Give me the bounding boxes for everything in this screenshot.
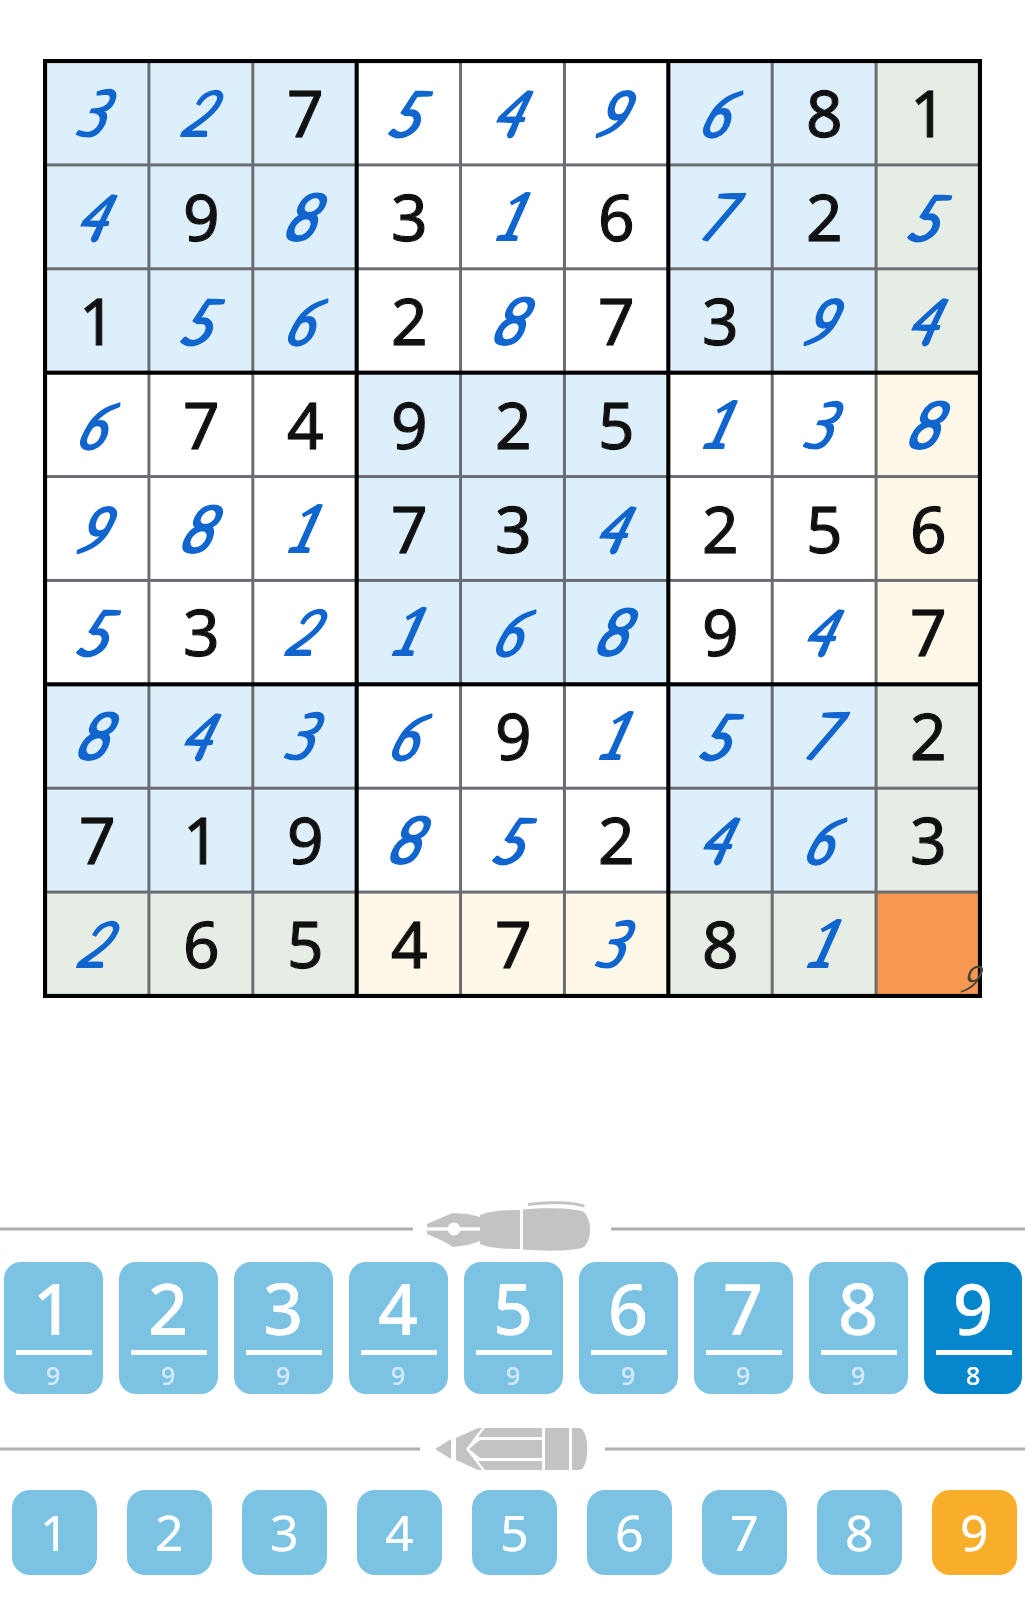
button[interactable]: 5 (149, 269, 253, 373)
button[interactable]: 2 (564, 788, 668, 892)
button[interactable]: 6 (587, 1490, 672, 1575)
button[interactable]: 1 (4, 1262, 103, 1394)
button[interactable]: 8 (253, 165, 357, 269)
button[interactable]: 4 (349, 1262, 448, 1394)
button[interactable]: 3 (149, 580, 253, 684)
button[interactable]: 7 (253, 61, 357, 165)
button[interactable]: 3 (772, 373, 876, 477)
button[interactable]: 8 (149, 477, 253, 581)
button[interactable]: 7 (45, 788, 149, 892)
button[interactable]: 1 (149, 788, 253, 892)
button[interactable]: Pencil notes mode (430, 1417, 600, 1467)
button[interactable]: 4 (149, 684, 253, 788)
button[interactable]: 8 (809, 1262, 908, 1394)
button[interactable]: 3 (242, 1490, 327, 1575)
button[interactable]: 3 (668, 269, 772, 373)
button[interactable]: 5 (876, 165, 980, 269)
button[interactable]: 3 (564, 892, 668, 996)
button[interactable]: 2 (668, 477, 772, 581)
button[interactable]: 1 (253, 477, 357, 581)
button[interactable]: 1 (876, 61, 980, 165)
button[interactable]: 5 (772, 477, 876, 581)
button[interactable]: 9 (149, 165, 253, 269)
button[interactable]: 8 (772, 61, 876, 165)
button[interactable]: 5 (45, 580, 149, 684)
button[interactable]: 5 (253, 892, 357, 996)
button[interactable]: 9 (357, 373, 461, 477)
button[interactable]: 7 (772, 684, 876, 788)
button[interactable]: 8 (357, 788, 461, 892)
button[interactable]: 5 (461, 788, 565, 892)
button[interactable]: 1 (12, 1490, 97, 1575)
button[interactable]: 3 (234, 1262, 333, 1394)
button[interactable]: 3 (461, 477, 565, 581)
button[interactable]: 4 (461, 61, 565, 165)
button[interactable]: 7 (357, 477, 461, 581)
button[interactable]: 4 (876, 269, 980, 373)
button[interactable]: 5 (472, 1490, 557, 1575)
button[interactable]: 4 (564, 477, 668, 581)
button[interactable]: 2 (127, 1490, 212, 1575)
button[interactable]: 2 (253, 580, 357, 684)
button[interactable]: 4 (253, 373, 357, 477)
button[interactable]: 8 (876, 373, 980, 477)
button[interactable]: 3 (45, 61, 149, 165)
button[interactable]: 8 (461, 269, 565, 373)
button[interactable]: 6 (461, 580, 565, 684)
button[interactable]: 5 (357, 61, 461, 165)
button[interactable]: 6 (564, 165, 668, 269)
button[interactable]: 6 (772, 788, 876, 892)
button[interactable]: 3 (876, 788, 980, 892)
button[interactable]: 5 (668, 684, 772, 788)
button[interactable]: 9 (932, 1490, 1017, 1575)
button[interactable]: 6 (579, 1262, 678, 1394)
button[interactable]: 8 (45, 684, 149, 788)
button[interactable]: 7 (149, 373, 253, 477)
button[interactable]: 7 (564, 269, 668, 373)
button[interactable]: 3 (253, 684, 357, 788)
button[interactable]: 4 (45, 165, 149, 269)
button[interactable]: 8 (564, 580, 668, 684)
button[interactable]: 9 (461, 684, 565, 788)
button[interactable]: 5 (564, 373, 668, 477)
button[interactable]: 3 (357, 165, 461, 269)
button[interactable]: 7 (668, 165, 772, 269)
button[interactable]: 9 (45, 477, 149, 581)
button[interactable]: 9 (668, 580, 772, 684)
button[interactable]: 6 (357, 684, 461, 788)
button[interactable]: 7 (461, 892, 565, 996)
button[interactable]: 9 (772, 269, 876, 373)
button[interactable]: 6 (253, 269, 357, 373)
button[interactable]: 1 (461, 165, 565, 269)
button[interactable]: 2 (876, 684, 980, 788)
button[interactable]: 2 (149, 61, 253, 165)
button[interactable]: 7 (694, 1262, 793, 1394)
button[interactable]: 1 (668, 373, 772, 477)
button[interactable]: 2 (461, 373, 565, 477)
button[interactable]: 6 (149, 892, 253, 996)
button[interactable]: 9 (924, 1262, 1022, 1394)
button[interactable]: 2 (119, 1262, 218, 1394)
button[interactable]: 1 (45, 269, 149, 373)
button[interactable]: 2 (45, 892, 149, 996)
button[interactable]: 8 (817, 1490, 902, 1575)
button[interactable]: 1 (772, 892, 876, 996)
button[interactable]: Pen entry mode (425, 1189, 610, 1249)
button[interactable]: 6 (45, 373, 149, 477)
button[interactable]: 9 (253, 788, 357, 892)
button[interactable]: 6 (876, 477, 980, 581)
button[interactable]: 9 (564, 61, 668, 165)
button[interactable]: 6 (668, 61, 772, 165)
button[interactable]: 4 (357, 1490, 442, 1575)
button[interactable]: 8 (668, 892, 772, 996)
button[interactable]: 4 (772, 580, 876, 684)
button[interactable]: 2 (357, 269, 461, 373)
button[interactable]: 7 (876, 580, 980, 684)
button[interactable]: 1 (357, 580, 461, 684)
button[interactable]: 4 (357, 892, 461, 996)
button[interactable]: 7 (702, 1490, 787, 1575)
button[interactable]: 9 (876, 892, 980, 996)
button[interactable]: 5 (464, 1262, 563, 1394)
button[interactable]: 2 (772, 165, 876, 269)
button[interactable]: 4 (668, 788, 772, 892)
